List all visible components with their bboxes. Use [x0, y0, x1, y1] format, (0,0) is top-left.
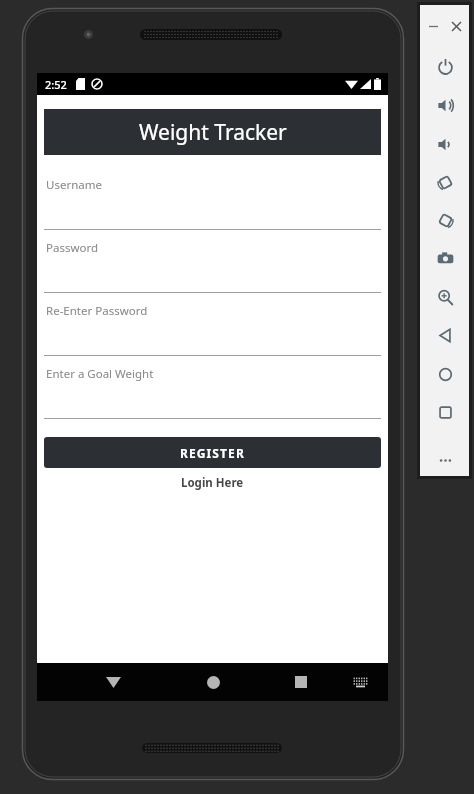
button[interactable]: Overview [431, 398, 459, 426]
button[interactable]: Minimize [426, 19, 440, 33]
button[interactable]: Enter a Goal Weight [44, 360, 381, 423]
button[interactable]: Volume down [431, 130, 459, 158]
button[interactable]: Username [44, 171, 381, 234]
staticText: Username [46, 177, 102, 193]
staticText: Password [46, 240, 99, 256]
button[interactable]: REGISTER [44, 437, 381, 468]
button[interactable]: Screenshot [431, 244, 459, 272]
staticText: Enter a Goal Weight [46, 366, 154, 382]
button[interactable]: Close [449, 19, 463, 33]
button[interactable]: Home [196, 665, 230, 699]
button[interactable]: Back [431, 321, 459, 349]
button[interactable]: Re-Enter Password [44, 297, 381, 360]
staticText: 2:52 [45, 77, 67, 92]
button[interactable]: Recent apps [284, 665, 318, 699]
staticText: REGISTER [180, 445, 245, 461]
button[interactable]: Zoom [431, 283, 459, 311]
button[interactable]: Rotate left [431, 168, 459, 196]
button[interactable]: Keyboard [346, 668, 374, 696]
button[interactable]: Back [96, 665, 130, 699]
button[interactable]: Login Here [173, 473, 252, 493]
staticText: Re-Enter Password [46, 303, 148, 319]
button[interactable]: Home [431, 360, 459, 388]
button[interactable]: More [431, 446, 459, 474]
button[interactable]: Password [44, 234, 381, 297]
staticText: Weight Tracker [139, 118, 287, 147]
button[interactable]: Weight Tracker [44, 109, 381, 155]
button[interactable]: Rotate right [431, 206, 459, 234]
button[interactable]: Volume up [431, 91, 459, 119]
button[interactable]: Power [431, 52, 459, 80]
